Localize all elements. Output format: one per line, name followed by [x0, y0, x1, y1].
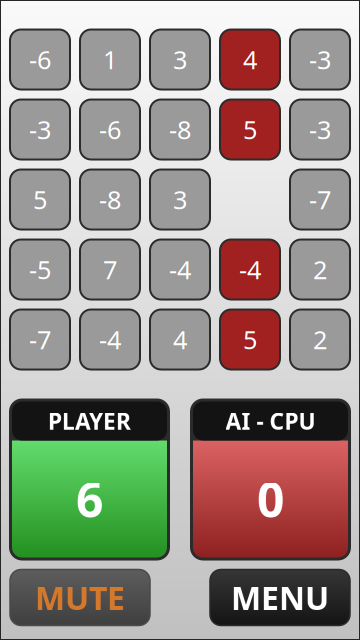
- staticText: -7: [309, 183, 331, 216]
- button[interactable]: 2: [290, 239, 350, 299]
- staticText: AI - CPU: [225, 406, 315, 436]
- staticText: -4: [99, 323, 121, 356]
- staticText: 5: [243, 113, 257, 146]
- staticText: 3: [173, 43, 187, 76]
- staticText: -7: [29, 323, 51, 356]
- button[interactable]: -7: [290, 169, 350, 229]
- staticText: 3: [173, 183, 187, 216]
- staticText: -8: [169, 113, 191, 146]
- button[interactable]: -3: [290, 99, 350, 159]
- button[interactable]: 7: [80, 239, 140, 299]
- button[interactable]: -8: [80, 169, 140, 229]
- button[interactable]: -7: [10, 309, 70, 369]
- button[interactable]: -4: [220, 239, 280, 299]
- button[interactable]: 4: [220, 29, 280, 89]
- button[interactable]: 4: [150, 309, 210, 369]
- button[interactable]: MENU: [210, 569, 350, 625]
- staticText: -6: [29, 43, 51, 76]
- staticText: 5: [243, 323, 257, 356]
- staticText: 0: [257, 467, 284, 531]
- staticText: -3: [29, 113, 51, 146]
- button[interactable]: -3: [10, 99, 70, 159]
- staticText: -6: [99, 113, 121, 146]
- staticText: -4: [169, 253, 191, 286]
- button[interactable]: 3: [150, 29, 210, 89]
- button[interactable]: 5: [220, 309, 280, 369]
- staticText: -8: [99, 183, 121, 216]
- button[interactable]: -4: [150, 239, 210, 299]
- staticText: 2: [313, 323, 327, 356]
- button[interactable]: -4: [80, 309, 140, 369]
- button[interactable]: 1: [80, 29, 140, 89]
- button[interactable]: -8: [150, 99, 210, 159]
- staticText: 2: [313, 253, 327, 286]
- staticText: MUTE: [35, 576, 125, 619]
- staticText: PLAYER: [48, 406, 131, 436]
- staticText: 1: [103, 43, 117, 76]
- staticText: -3: [309, 113, 331, 146]
- staticText: MENU: [231, 576, 329, 619]
- button[interactable]: 5: [10, 169, 70, 229]
- button[interactable]: -6: [80, 99, 140, 159]
- button[interactable]: -6: [10, 29, 70, 89]
- staticText: 5: [33, 183, 47, 216]
- staticText: 4: [243, 43, 257, 76]
- button[interactable]: 3: [150, 169, 210, 229]
- button[interactable]: MUTE: [10, 569, 150, 625]
- button[interactable]: 5: [220, 99, 280, 159]
- staticText: -3: [309, 43, 331, 76]
- staticText: -5: [29, 253, 51, 286]
- button[interactable]: 2: [290, 309, 350, 369]
- button[interactable]: -3: [290, 29, 350, 89]
- button[interactable]: -5: [10, 239, 70, 299]
- staticText: -4: [239, 253, 261, 286]
- staticText: 4: [173, 323, 187, 356]
- staticText: 6: [76, 467, 103, 531]
- staticText: 7: [103, 253, 117, 286]
